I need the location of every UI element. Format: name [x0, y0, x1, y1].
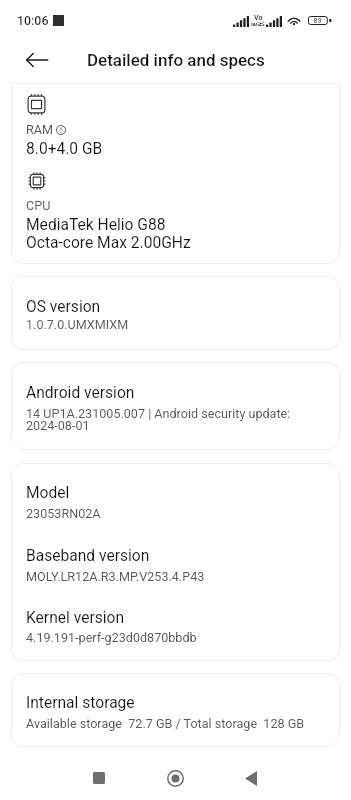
staticText: 14 UP1A.231005.007 | Android security up… [26, 406, 330, 433]
staticText: Vo [254, 14, 263, 22]
staticText: Internal storage [26, 694, 135, 712]
button[interactable]: Back [227, 754, 275, 800]
staticText: WiFi [251, 22, 265, 26]
button[interactable]: Home [151, 754, 199, 800]
staticText: CPU [26, 198, 51, 213]
staticText: 23053RN02A [26, 506, 101, 521]
staticText: Baseband version [26, 547, 150, 565]
staticText: Detailed info and specs [87, 50, 265, 70]
button[interactable]: Model [11, 463, 340, 661]
staticText: 10:06 [17, 13, 49, 28]
button[interactable]: RAM [11, 83, 340, 264]
staticText: OS version [26, 298, 101, 316]
staticText: 4.19.191-perf-g23d0d870bbdb [26, 630, 197, 645]
staticText: Model [26, 484, 70, 502]
staticText: 1.0.7.0.UMXMIXM [26, 317, 129, 332]
button[interactable]: Internal storage [11, 673, 340, 747]
button[interactable]: Android version [11, 362, 340, 450]
staticText: 89 [313, 16, 322, 25]
staticText: Kernel version [26, 609, 125, 627]
staticText: Android version [26, 384, 135, 402]
staticText: MediaTek Helio G88 [26, 216, 166, 234]
staticText: Available storage 72.7 GB / Total storag… [26, 716, 305, 731]
button[interactable]: OS version [11, 276, 340, 350]
button[interactable]: Back [25, 48, 49, 72]
button[interactable]: Recents [75, 754, 123, 800]
staticText: Octa-core Max 2.00GHz [26, 234, 191, 252]
staticText: MOLY.LR12A.R3.MP.V253.4.P43 [26, 569, 205, 584]
staticText: 8.0+4.0 GB [26, 140, 103, 158]
staticText: RAM [26, 122, 53, 137]
